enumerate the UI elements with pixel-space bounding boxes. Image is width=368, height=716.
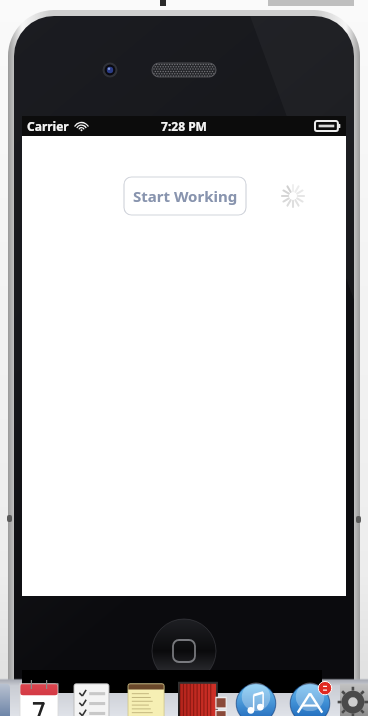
staticText: Carrier [27, 118, 69, 134]
staticText: 7:28 PM [161, 118, 207, 134]
staticText: Start Working [133, 186, 238, 206]
button[interactable]: Start Working [123, 176, 247, 216]
other: Loading [281, 184, 305, 208]
